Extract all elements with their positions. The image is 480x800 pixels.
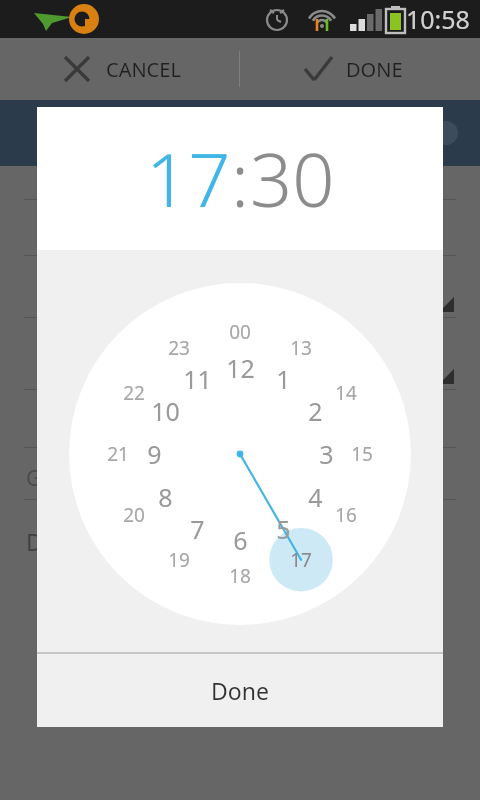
button[interactable]: 00 (229, 319, 251, 345)
button[interactable]: 17 (290, 547, 312, 573)
button[interactable]: 30 (250, 128, 335, 229)
button[interactable]: 3 (319, 437, 334, 471)
button[interactable]: 6 (233, 523, 248, 557)
staticText: Description (26, 526, 150, 557)
button[interactable]: Cancel (0, 38, 239, 100)
button[interactable]: 13 (290, 335, 312, 361)
button[interactable]: 2 (308, 394, 323, 428)
button[interactable]: 20 (123, 502, 145, 528)
button[interactable]: 11 (183, 362, 212, 396)
button[interactable]: 4 (308, 480, 323, 514)
other: Done (302, 53, 334, 85)
button[interactable]: 8 (158, 480, 173, 514)
button[interactable]: 21 (107, 441, 129, 467)
button[interactable]: 5 (276, 512, 291, 546)
button[interactable]: 14 (335, 380, 357, 406)
button[interactable]: 10 (151, 394, 180, 428)
button[interactable]: 19 (168, 547, 190, 573)
staticText: DONE (346, 56, 403, 83)
staticText: : (231, 128, 250, 229)
staticText: CANCEL (106, 56, 181, 83)
staticText: Guests (26, 464, 94, 493)
button[interactable]: 16 (335, 502, 357, 528)
other: Cancel (62, 54, 92, 84)
button[interactable]: Done (37, 654, 443, 727)
button[interactable]: 7 (190, 512, 205, 546)
button[interactable]: 22 (123, 380, 145, 406)
button[interactable]: 17 (146, 128, 231, 229)
button[interactable]: 1 (276, 362, 291, 396)
button[interactable]: Done (240, 38, 480, 100)
staticText: Done (211, 675, 269, 706)
button[interactable]: 12 (226, 351, 255, 385)
button[interactable]: 18 (229, 563, 251, 589)
staticText: 10:58 (406, 2, 470, 36)
button[interactable]: 23 (168, 335, 190, 361)
button[interactable]: 9 (147, 437, 162, 471)
button[interactable]: 15 (351, 441, 373, 467)
